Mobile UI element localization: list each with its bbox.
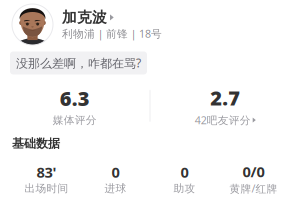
button[interactable]: 加克波 [0,0,300,45]
staticText: 加克波 [62,8,107,26]
staticText: 进球 [104,182,126,195]
staticText: 0 [111,162,119,182]
staticText: 出场时间 [24,182,68,195]
button[interactable]: 2.7 [150,84,300,127]
staticText: 基础数据 [12,136,60,151]
staticText: 利物浦 ∣ 前锋 ∣ 18号 [62,26,162,41]
staticText: 助攻 [173,182,195,195]
staticText: 媒体评分 [53,113,97,127]
staticText: 没那么差啊，咋都在骂? [16,55,141,71]
staticText: 2.7 [210,84,240,111]
staticText: 0/0 [242,162,264,181]
staticText: 42吧友评分 [195,113,251,127]
staticText: 黄牌/红牌 [229,181,277,196]
staticText: 6.3 [60,85,90,112]
staticText: 0 [180,162,188,182]
button[interactable]: 6.3 [0,85,149,127]
staticText: 83' [36,162,56,182]
